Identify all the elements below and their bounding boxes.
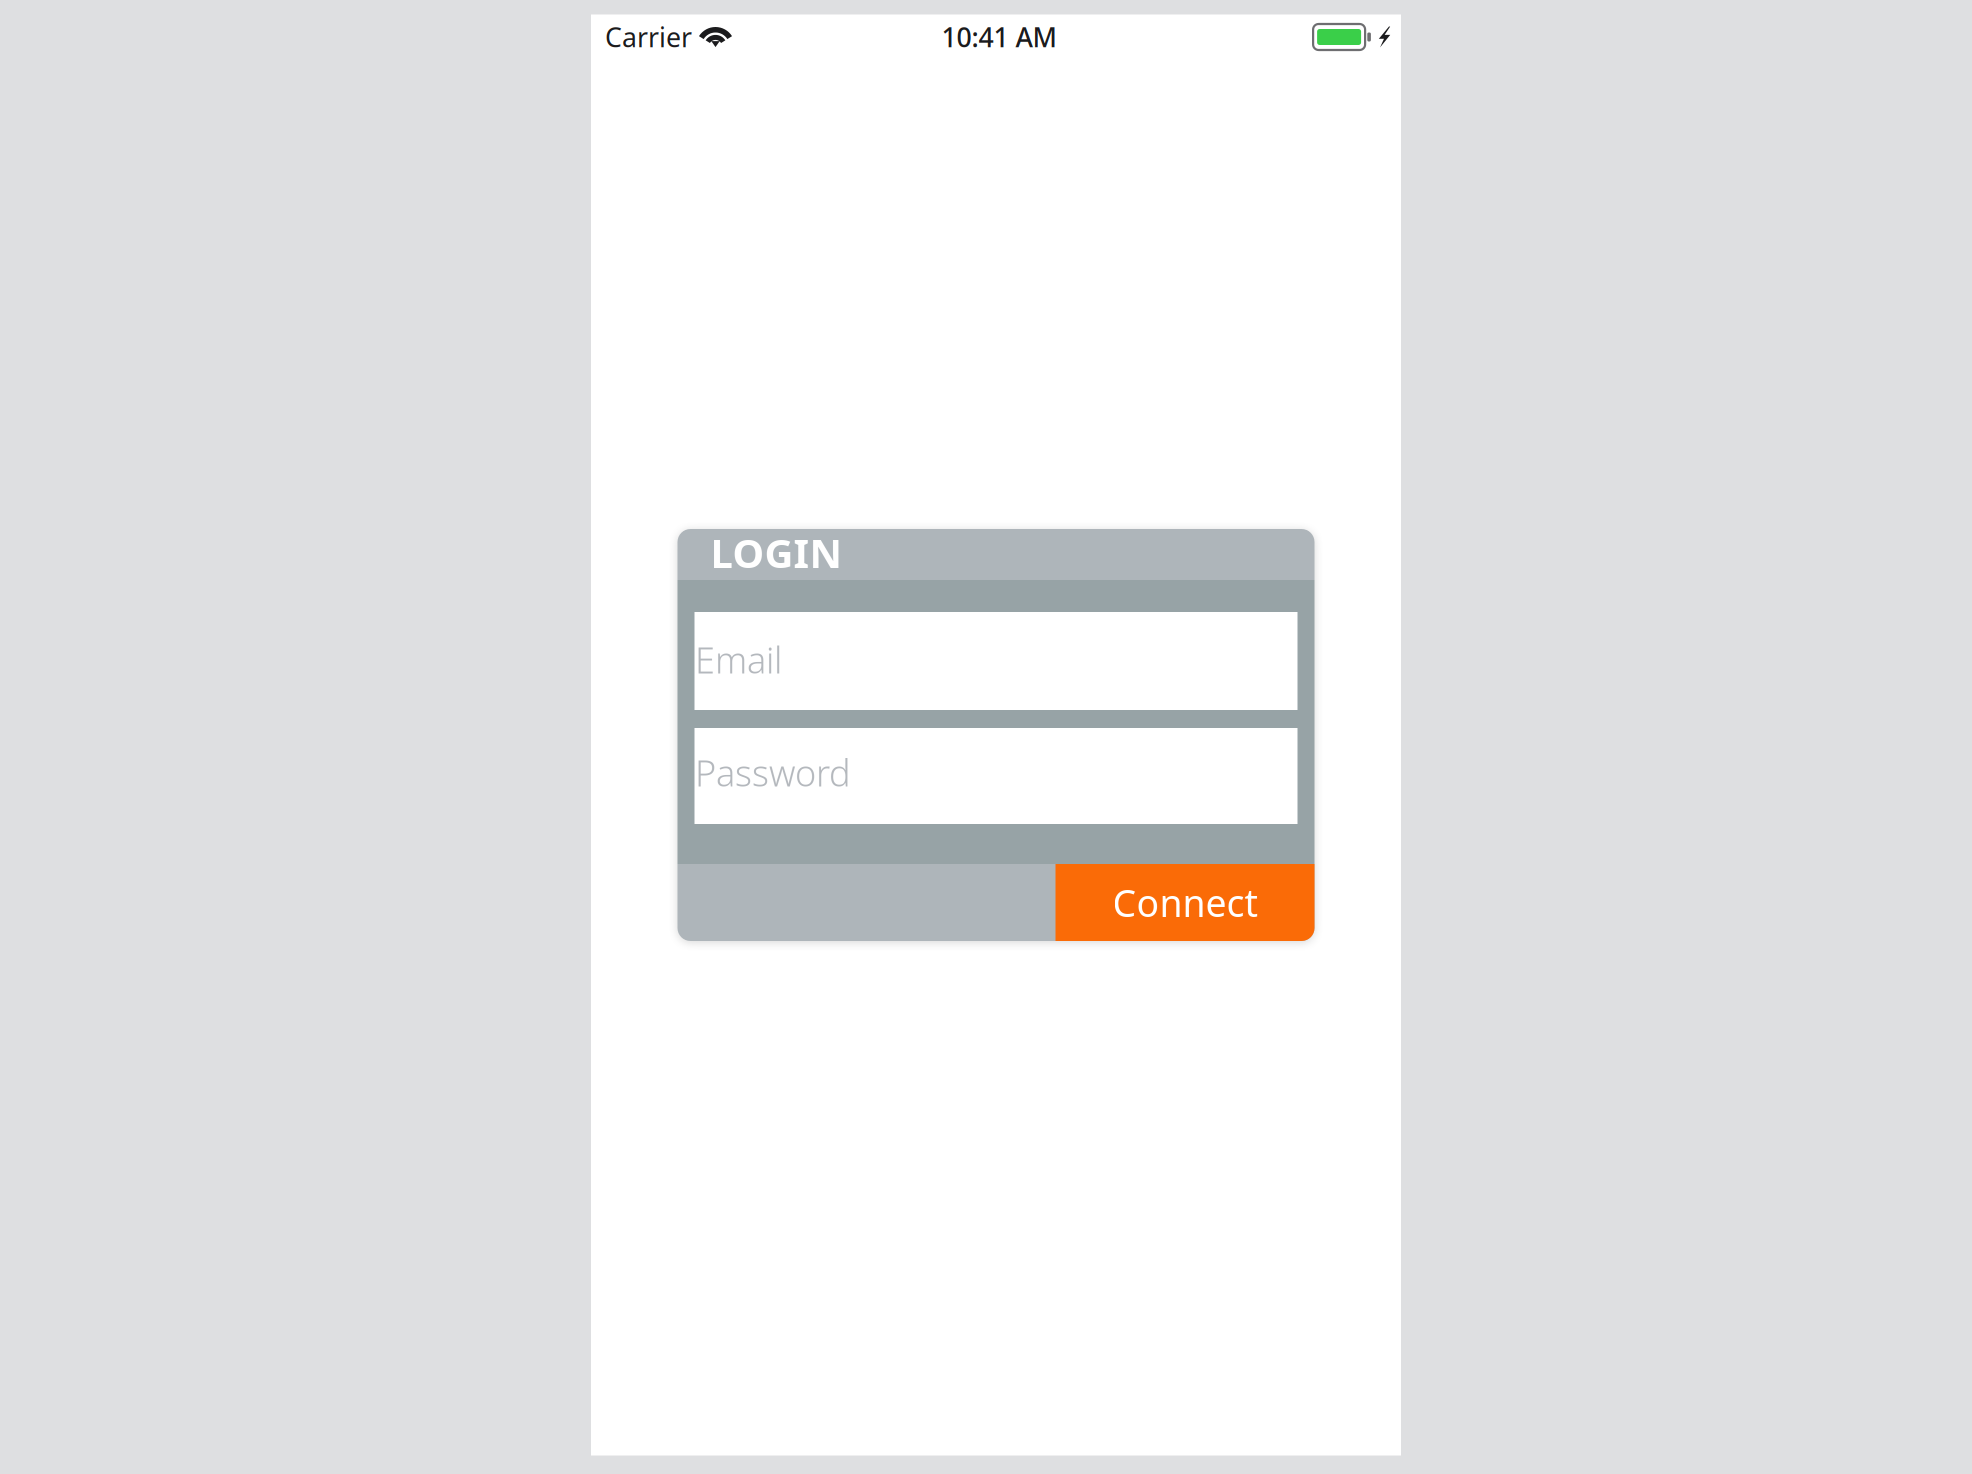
- button[interactable]: Password: [694, 728, 1297, 824]
- button[interactable]: Email: [694, 612, 1297, 710]
- staticText: Carrier: [605, 19, 692, 55]
- staticText: Password: [695, 749, 851, 796]
- staticText: Connect: [1112, 878, 1257, 927]
- staticText: 10:41 AM: [941, 19, 1056, 55]
- button[interactable]: Connect: [1055, 864, 1314, 941]
- staticText: Email: [695, 636, 782, 683]
- staticText: LOGIN: [710, 526, 842, 579]
